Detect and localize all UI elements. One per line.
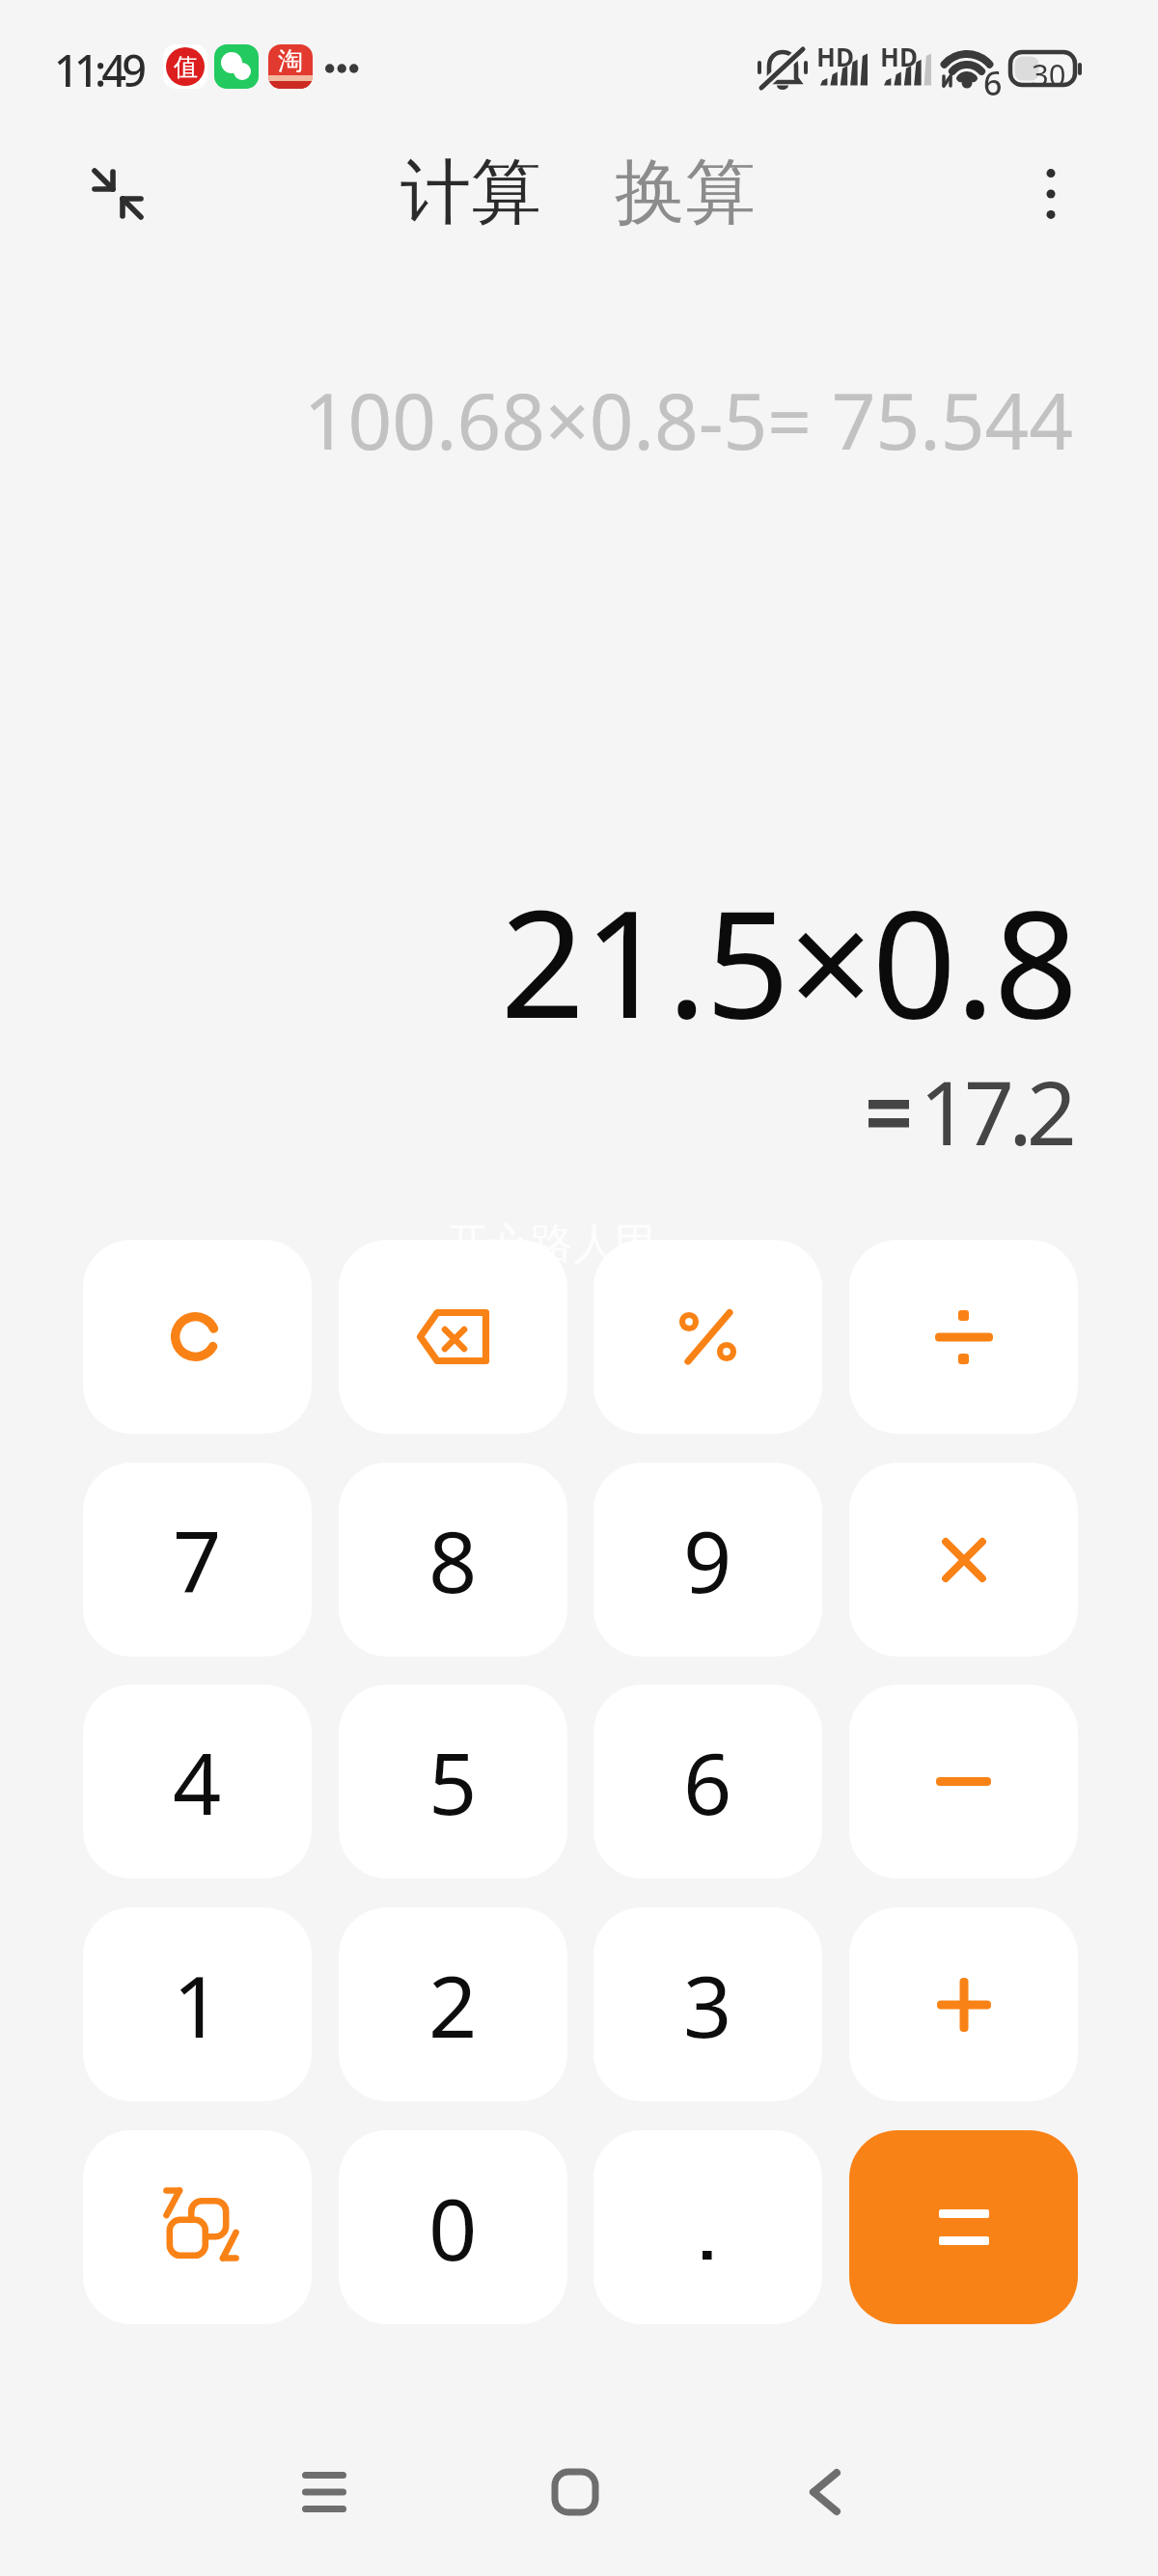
button[interactable]: Decimal point xyxy=(593,2130,822,2324)
staticText: 21.5×0.8 xyxy=(0,860,1077,1060)
button[interactable]: 计算 xyxy=(400,149,541,237)
button[interactable]: 2 xyxy=(339,1907,567,2101)
staticText: 1 xyxy=(173,1947,222,2063)
button[interactable]: Unit conversion xyxy=(83,2130,312,2324)
button[interactable]: Collapse xyxy=(65,141,171,247)
staticText: 100.68×0.8-5= 75.544 xyxy=(0,367,1073,472)
button[interactable]: Percent xyxy=(593,1240,822,1434)
staticText: 4 xyxy=(173,1724,222,1840)
button[interactable]: 8 xyxy=(339,1463,567,1657)
staticText: 开心路人甲 xyxy=(0,1218,1131,1271)
button[interactable]: 5 xyxy=(339,1685,567,1878)
button[interactable]: Backspace xyxy=(339,1240,567,1434)
staticText: 30 xyxy=(1032,54,1066,95)
staticText: 5 xyxy=(428,1724,478,1840)
staticText: 8 xyxy=(428,1502,478,1618)
button[interactable]: 6 xyxy=(593,1685,822,1878)
staticText: HD xyxy=(880,40,918,73)
button[interactable]: 7 xyxy=(83,1463,312,1657)
staticText: 换算 xyxy=(615,149,756,237)
button[interactable]: 1 xyxy=(83,1907,312,2101)
staticText: 6 xyxy=(983,61,1003,105)
button[interactable]: 3 xyxy=(593,1907,822,2101)
staticText: 计算 xyxy=(400,149,541,237)
button[interactable]: Clear xyxy=(83,1240,312,1434)
button[interactable]: Equals xyxy=(849,2130,1078,2324)
staticText: 11:49 xyxy=(54,41,143,99)
button[interactable]: Recent apps xyxy=(257,2425,392,2560)
button[interactable]: Minus xyxy=(849,1685,1078,1878)
button[interactable]: Multiply xyxy=(849,1463,1078,1657)
button[interactable]: 0 xyxy=(339,2130,567,2324)
button[interactable]: Home xyxy=(508,2425,643,2560)
staticText: 17.2 xyxy=(0,1052,1071,1171)
button[interactable]: 4 xyxy=(83,1685,312,1878)
staticText: 2 xyxy=(428,1947,478,2063)
staticText: 3 xyxy=(683,1947,732,2063)
button[interactable]: 9 xyxy=(593,1463,822,1657)
button[interactable]: 换算 xyxy=(615,149,756,237)
staticText: HD xyxy=(816,40,854,73)
staticText: 0 xyxy=(428,2170,478,2286)
staticText: 淘 xyxy=(278,45,303,77)
button[interactable]: Plus xyxy=(849,1907,1078,2101)
staticText: 6 xyxy=(683,1724,732,1840)
button[interactable]: More options xyxy=(998,141,1104,247)
button[interactable]: Back xyxy=(758,2425,893,2560)
button[interactable]: Divide xyxy=(849,1240,1078,1434)
staticText: 9 xyxy=(683,1502,732,1618)
staticText: 7 xyxy=(173,1502,222,1618)
staticText: 值 xyxy=(174,52,198,82)
